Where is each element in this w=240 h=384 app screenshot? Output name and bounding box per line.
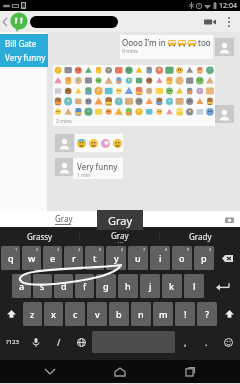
staticText: w xyxy=(28,252,36,264)
staticText: o xyxy=(179,252,185,264)
button[interactable]: Recents xyxy=(170,360,210,383)
button[interactable]: Home xyxy=(100,360,140,383)
button[interactable]: j xyxy=(140,274,160,298)
button[interactable]: , xyxy=(175,330,196,354)
button[interactable]: i xyxy=(150,246,170,270)
button[interactable]: ?123 xyxy=(0,330,24,354)
button[interactable]: ! xyxy=(175,302,195,326)
staticText: 3 xyxy=(57,247,60,252)
button[interactable]: o xyxy=(172,246,192,270)
button[interactable]: l xyxy=(184,274,204,298)
button[interactable]: a xyxy=(12,274,31,298)
button[interactable]: s xyxy=(33,274,52,298)
staticText: Gray xyxy=(111,230,129,241)
button[interactable]: u xyxy=(128,246,148,270)
button[interactable]: Bill Gate xyxy=(0,34,48,67)
button[interactable]: t xyxy=(85,246,104,270)
button[interactable]: z xyxy=(23,302,42,326)
staticText: / xyxy=(57,336,61,348)
staticText: too xyxy=(198,37,211,48)
button[interactable]: b xyxy=(109,302,129,326)
staticText: g xyxy=(103,280,109,292)
staticText: ? xyxy=(205,308,210,320)
staticText: z xyxy=(30,308,35,320)
button[interactable]: v xyxy=(87,302,107,326)
button[interactable]: Shift xyxy=(0,302,22,326)
button[interactable]: q xyxy=(1,246,20,270)
button[interactable]: . xyxy=(196,330,217,354)
staticText: h xyxy=(125,280,131,292)
staticText: 7 xyxy=(143,247,146,252)
button[interactable]: n xyxy=(131,302,151,326)
button[interactable]: g xyxy=(96,274,116,298)
staticText: 1 min xyxy=(77,172,91,179)
button[interactable]: h xyxy=(118,274,138,298)
button[interactable]: Grady xyxy=(160,227,240,246)
staticText: u xyxy=(135,252,141,264)
button[interactable]: / xyxy=(47,330,70,354)
staticText: Bill Gate xyxy=(5,38,37,49)
staticText: 9 xyxy=(187,247,190,252)
button[interactable]: f xyxy=(75,274,94,298)
staticText: . xyxy=(205,336,208,348)
staticText: p xyxy=(201,252,207,264)
staticText: c xyxy=(73,308,78,320)
button[interactable]: Shift xyxy=(218,302,240,326)
button[interactable]: d xyxy=(54,274,73,298)
button[interactable]: m xyxy=(153,302,173,326)
staticText: y xyxy=(114,252,119,264)
button[interactable]: e xyxy=(43,246,62,270)
staticText: d xyxy=(61,280,67,292)
staticText: f xyxy=(83,280,87,292)
button[interactable]: p xyxy=(194,246,214,270)
button[interactable]: r xyxy=(64,246,83,270)
button[interactable]: Voice input xyxy=(24,330,47,354)
staticText: j xyxy=(149,280,152,292)
staticText: Oooo I'm in xyxy=(122,37,166,48)
staticText: 0 xyxy=(209,247,212,252)
button[interactable]: Back xyxy=(30,360,70,383)
staticText: Gray xyxy=(55,213,73,224)
button[interactable]: Camera xyxy=(222,212,236,226)
staticText: ?123 xyxy=(6,338,19,346)
staticText: ! xyxy=(184,308,187,320)
button[interactable]: x xyxy=(44,302,63,326)
staticText: Gray xyxy=(108,213,133,228)
button[interactable]: Back xyxy=(1,12,9,32)
button[interactable]: k xyxy=(162,274,182,298)
button[interactable]: y xyxy=(106,246,126,270)
staticText: s xyxy=(40,280,45,292)
staticText: 2 mins xyxy=(56,118,72,125)
button[interactable]: Gray xyxy=(80,227,160,246)
staticText: Very funny xyxy=(5,52,46,63)
button[interactable]: More options xyxy=(221,11,237,32)
button[interactable]: Emoji xyxy=(217,330,240,354)
staticText: 1 xyxy=(15,247,18,252)
staticText: q xyxy=(8,252,14,264)
staticText: Very funny xyxy=(77,161,118,172)
button[interactable]: Backspace xyxy=(215,246,240,270)
staticText: 4 xyxy=(78,247,81,252)
staticText: , xyxy=(184,336,187,348)
button[interactable]: Grassy xyxy=(0,227,80,246)
button[interactable]: Enter xyxy=(205,274,240,298)
staticText: 5 xyxy=(99,247,102,252)
staticText: 9 mins xyxy=(122,48,138,55)
staticText: a xyxy=(19,280,25,292)
staticText: m xyxy=(159,308,168,320)
staticText: i xyxy=(159,252,162,264)
staticText: l xyxy=(193,280,196,292)
button[interactable]: Video call xyxy=(199,11,221,32)
button[interactable]: w xyxy=(22,246,41,270)
staticText: x xyxy=(51,308,56,320)
staticText: 8 xyxy=(165,247,168,252)
button[interactable]: c xyxy=(65,302,85,326)
staticText: Grady xyxy=(189,231,212,242)
button[interactable]: Change language xyxy=(70,330,92,354)
staticText: v xyxy=(95,308,100,320)
staticText: n xyxy=(138,308,144,320)
staticText: k xyxy=(169,280,175,292)
staticText: t xyxy=(93,252,97,264)
button[interactable]: ? xyxy=(197,302,217,326)
